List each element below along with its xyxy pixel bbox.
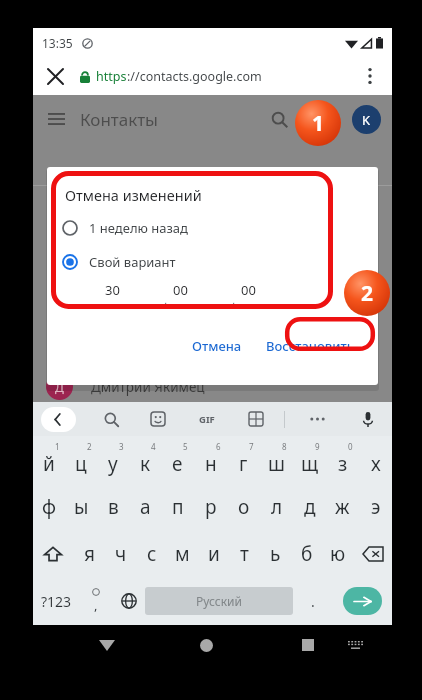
button[interactable]: Back bbox=[87, 625, 127, 665]
staticText: Русский bbox=[196, 593, 242, 609]
staticText: GIF bbox=[199, 413, 215, 426]
button[interactable]: K bbox=[352, 105, 381, 134]
staticText: ?123 bbox=[41, 592, 72, 611]
staticText: у bbox=[108, 451, 118, 477]
button[interactable]: т bbox=[229, 530, 260, 577]
button[interactable]: Close bbox=[40, 61, 70, 91]
staticText: 8 bbox=[282, 441, 287, 452]
button[interactable]: More options bbox=[356, 62, 384, 90]
button[interactable]: Русский bbox=[145, 587, 293, 615]
button[interactable]: 1 неделю назад bbox=[62, 212, 252, 244]
staticText: ы bbox=[74, 494, 89, 520]
staticText: х bbox=[371, 451, 381, 477]
staticText: щ bbox=[301, 451, 319, 477]
button[interactable]: Voice input bbox=[355, 406, 381, 432]
button[interactable]: Translate bbox=[243, 406, 269, 432]
button[interactable]: 5 bbox=[161, 436, 194, 483]
button[interactable]: Menu bbox=[44, 107, 68, 131]
button[interactable]: Д bbox=[46, 371, 392, 402]
button[interactable]: , bbox=[79, 577, 112, 625]
button[interactable]: в bbox=[97, 483, 129, 530]
button[interactable]: 6 bbox=[194, 436, 227, 483]
button[interactable]: Back bbox=[41, 407, 76, 432]
staticText: 00 bbox=[173, 281, 188, 299]
staticText: , bbox=[164, 291, 168, 307]
button[interactable]: р bbox=[194, 483, 227, 530]
button[interactable]: Search bbox=[98, 406, 124, 432]
button[interactable]: Help bbox=[312, 107, 336, 131]
button[interactable]: я bbox=[73, 530, 105, 577]
button[interactable]: ь bbox=[260, 530, 291, 577]
staticText: ц bbox=[75, 451, 87, 477]
button[interactable]: GIF bbox=[192, 406, 222, 432]
button[interactable]: х bbox=[359, 436, 392, 483]
staticText: Свой вариант bbox=[89, 253, 176, 271]
staticText: Контакты bbox=[80, 108, 159, 131]
button[interactable]: 9 bbox=[293, 436, 326, 483]
staticText: ю bbox=[330, 541, 346, 567]
staticText: 4 bbox=[151, 441, 156, 452]
button[interactable]: Shift bbox=[33, 530, 73, 577]
button[interactable]: б bbox=[291, 530, 322, 577]
staticText: Отмена bbox=[192, 337, 242, 355]
staticText: ://contacts.google.com bbox=[127, 68, 262, 85]
button[interactable]: э bbox=[359, 483, 392, 530]
staticText: 6 bbox=[216, 441, 221, 452]
button[interactable]: Свой вариант bbox=[62, 246, 252, 278]
button[interactable]: 4 bbox=[129, 436, 161, 483]
button[interactable]: с bbox=[136, 530, 167, 577]
staticText: 0 bbox=[348, 441, 353, 452]
staticText: Д bbox=[55, 379, 64, 395]
button[interactable]: 1 bbox=[33, 436, 65, 483]
button[interactable]: ?123 bbox=[33, 577, 79, 625]
staticText: 5 bbox=[183, 441, 188, 452]
button[interactable]: д bbox=[293, 483, 326, 530]
button[interactable]: ю bbox=[322, 530, 353, 577]
staticText: 1 неделю назад bbox=[89, 219, 188, 237]
button[interactable]: Backspace bbox=[353, 530, 392, 577]
button[interactable]: . bbox=[293, 577, 333, 625]
button[interactable]: 0 bbox=[326, 436, 359, 483]
staticText: Отмена изменений bbox=[65, 185, 202, 205]
button[interactable]: л bbox=[260, 483, 293, 530]
staticText: з bbox=[338, 451, 348, 477]
button[interactable]: ф bbox=[33, 483, 65, 530]
button[interactable]: ч bbox=[105, 530, 136, 577]
staticText: я bbox=[84, 541, 95, 567]
staticText: 9 bbox=[315, 441, 320, 452]
staticText: 1 bbox=[55, 441, 60, 452]
button[interactable]: Search bbox=[267, 107, 291, 131]
staticText: Восстановить bbox=[266, 337, 354, 355]
button[interactable]: Hide keyboard bbox=[338, 625, 372, 665]
button[interactable]: Восстановить bbox=[258, 330, 362, 362]
button[interactable]: Change language bbox=[112, 577, 145, 625]
button[interactable]: Enter bbox=[343, 587, 382, 615]
staticText: 30 bbox=[105, 281, 120, 299]
staticText: э bbox=[371, 494, 381, 520]
button[interactable]: Recent apps bbox=[288, 625, 328, 665]
staticText: 13:35 bbox=[42, 35, 73, 51]
button[interactable]: Отмена bbox=[184, 330, 250, 362]
button[interactable]: Home bbox=[186, 625, 226, 665]
button[interactable]: 8 bbox=[260, 436, 293, 483]
button[interactable]: ж bbox=[326, 483, 359, 530]
staticText: 2 bbox=[87, 441, 92, 452]
button[interactable]: и bbox=[198, 530, 229, 577]
button[interactable]: 3 bbox=[97, 436, 129, 483]
button[interactable]: 7 bbox=[227, 436, 260, 483]
button[interactable]: п bbox=[161, 483, 194, 530]
button[interactable]: о bbox=[227, 483, 260, 530]
button[interactable]: м bbox=[167, 530, 198, 577]
button[interactable]: Stickers bbox=[145, 406, 171, 432]
button[interactable]: а bbox=[129, 483, 161, 530]
staticText: е bbox=[172, 451, 183, 477]
staticText: . bbox=[311, 592, 315, 611]
button[interactable]: ы bbox=[65, 483, 97, 530]
staticText: н bbox=[205, 451, 217, 477]
button[interactable]: More options bbox=[304, 406, 330, 432]
staticText: и bbox=[208, 541, 220, 567]
staticText: https bbox=[96, 68, 127, 85]
staticText: б bbox=[301, 541, 313, 567]
staticText: ф bbox=[42, 494, 57, 520]
button[interactable]: 2 bbox=[65, 436, 97, 483]
